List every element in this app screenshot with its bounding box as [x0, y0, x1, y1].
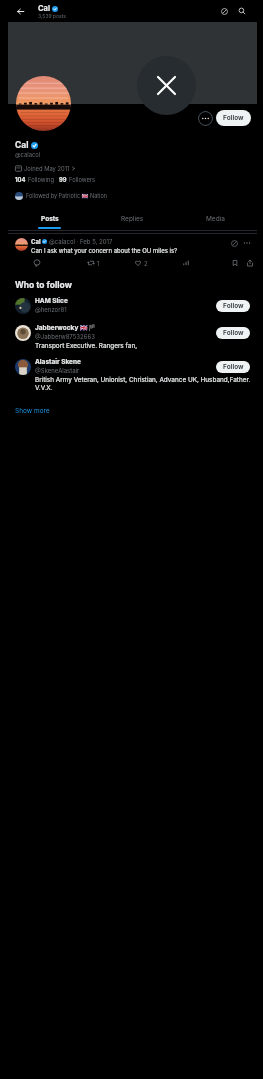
staticText: Replies — [121, 215, 144, 223]
staticText: Alastair Skene — [35, 358, 81, 366]
button[interactable]: Like — [134, 259, 148, 267]
button[interactable]: Search — [234, 3, 250, 19]
button[interactable]: Share — [246, 259, 254, 267]
button[interactable]: Reply — [33, 259, 41, 267]
staticText: British Army Veteran, Unionist, Christia… — [35, 376, 251, 392]
staticText: Cal — [31, 238, 41, 245]
staticText: Follow — [223, 114, 244, 122]
button[interactable]: Alastair Skene — [8, 358, 257, 392]
staticText: @calacol · Feb 5, 2017 — [49, 238, 113, 245]
button[interactable]: Views — [182, 259, 190, 267]
staticText: Follow — [223, 363, 244, 371]
staticText: Can I ask what your concern about the OU… — [31, 247, 178, 254]
staticText: 2 — [144, 260, 148, 267]
staticText: 99 — [59, 176, 67, 183]
button[interactable]: Follow — [216, 327, 250, 339]
staticText: @SkeneAlastair — [35, 367, 80, 374]
staticText: @henzor81 — [35, 306, 67, 313]
staticText: Joined May 2011 — [24, 165, 70, 172]
button[interactable]: Jabberwocky 🇬🇧🏴 — [8, 324, 257, 350]
button[interactable]: Replies — [91, 208, 174, 231]
staticText: Transport Executive. Rangers fan, — [35, 342, 137, 350]
button[interactable]: Show more — [15, 407, 50, 415]
staticText: @calacol — [15, 151, 41, 158]
button[interactable]: 99 — [59, 176, 96, 183]
staticText: 104 — [15, 176, 26, 183]
staticText: HAM Slice — [35, 297, 68, 305]
button[interactable]: HAM Slice — [8, 297, 257, 313]
button[interactable]: Media — [174, 208, 257, 231]
staticText: Cal — [15, 140, 29, 150]
button[interactable]: Joined May 2011 — [15, 165, 76, 172]
staticText: 3,539 posts — [38, 13, 66, 19]
staticText: Posts — [41, 215, 59, 223]
staticText: Follow — [223, 302, 244, 310]
button[interactable]: Follow — [216, 110, 251, 126]
staticText: Follow — [223, 329, 244, 337]
staticText: Media — [206, 215, 225, 223]
button[interactable]: Repost — [87, 259, 100, 267]
button[interactable]: Grok — [216, 3, 232, 19]
button[interactable]: Follow — [216, 300, 250, 312]
button[interactable]: Follow — [216, 361, 250, 373]
staticText: Cal — [38, 4, 50, 13]
button[interactable]: Posts — [8, 208, 91, 231]
button[interactable]: Cal — [8, 233, 257, 273]
button[interactable]: More — [242, 238, 252, 248]
staticText: Followed by Patriotic 🇬🇧 Nation — [26, 193, 107, 200]
button[interactable]: Back — [12, 3, 28, 19]
staticText: Jabberwocky 🇬🇧🏴 — [35, 324, 97, 332]
button[interactable]: 104 — [15, 176, 54, 183]
button[interactable]: More options — [198, 111, 213, 126]
staticText: Who to follow — [15, 280, 72, 290]
button[interactable]: Bookmark — [231, 259, 239, 267]
button[interactable]: Grok — [229, 238, 239, 248]
staticText: Following — [28, 176, 54, 183]
staticText: Followers — [69, 176, 96, 183]
staticText: 1 — [97, 260, 100, 267]
staticText: @Jabberw87532663 — [35, 333, 95, 340]
button[interactable]: Followed by Patriotic 🇬🇧 Nation — [15, 192, 107, 200]
button[interactable]: Close — [137, 56, 196, 115]
button[interactable]: Profile photo — [16, 76, 71, 131]
